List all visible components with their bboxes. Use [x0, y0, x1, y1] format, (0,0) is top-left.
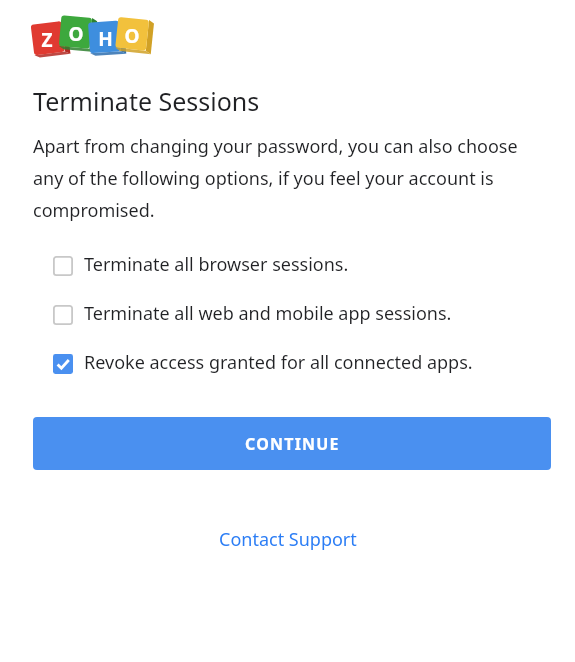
other: Zoho — [30, 14, 148, 58]
button[interactable]: Revoke access granted for all connected … — [0, 350, 575, 375]
button[interactable]: Terminate all browser sessions. — [0, 252, 575, 277]
staticText: Terminate Sessions — [33, 84, 260, 118]
button[interactable]: Contact Support — [211, 523, 365, 556]
button[interactable]: Terminate all web and mobile app session… — [0, 301, 575, 326]
staticText: H — [98, 26, 113, 48]
staticText: O — [68, 21, 84, 43]
staticText: Contact Support — [219, 527, 357, 552]
button[interactable]: CONTINUE — [33, 417, 551, 470]
staticText: Z — [41, 27, 53, 49]
staticText: Terminate all browser sessions. — [84, 252, 349, 277]
staticText: CONTINUE — [245, 433, 340, 455]
staticText: Apart from changing your password, you c… — [33, 134, 545, 222]
staticText: Revoke access granted for all connected … — [84, 350, 473, 375]
staticText: O — [124, 23, 140, 45]
staticText: Terminate all web and mobile app session… — [84, 301, 452, 326]
